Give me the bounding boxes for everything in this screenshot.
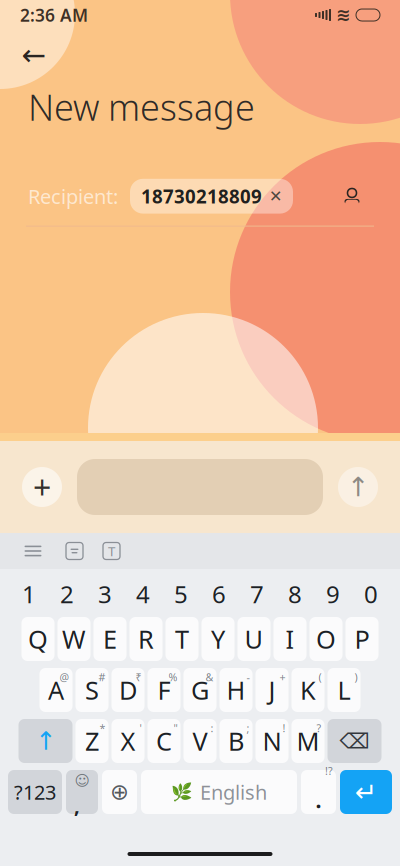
staticText: 2:36 AM <box>20 3 88 26</box>
button[interactable]: Choose contact <box>332 179 372 213</box>
button[interactable]: Send <box>338 467 378 507</box>
staticText: N <box>262 724 281 758</box>
staticText: Q <box>28 622 48 656</box>
staticText: R <box>138 622 154 656</box>
button[interactable]: Q <box>21 617 54 661</box>
button[interactable]: O <box>309 617 342 661</box>
button[interactable]: R <box>129 617 162 661</box>
button[interactable]: P <box>345 617 378 661</box>
button[interactable]: 1 <box>10 577 48 611</box>
button[interactable]: 18730218809 <box>130 179 293 214</box>
button[interactable]: 0 <box>352 577 390 611</box>
staticText: ≋ <box>336 5 351 25</box>
button[interactable]: E <box>93 617 126 661</box>
staticText: 5 <box>174 578 188 610</box>
button[interactable]: ( <box>291 668 324 712</box>
staticText: ↑ <box>347 472 369 502</box>
button[interactable]: 9 <box>314 577 352 611</box>
button[interactable]: 4 <box>124 577 162 611</box>
button[interactable]: Menu <box>20 538 46 564</box>
button[interactable] <box>77 459 323 515</box>
staticText: ⊕ <box>110 779 129 805</box>
staticText: ! <box>282 721 285 735</box>
staticText: T <box>175 622 189 656</box>
staticText: : <box>210 721 213 735</box>
button[interactable]: 7 <box>238 577 276 611</box>
button[interactable]: 8 <box>276 577 314 611</box>
staticText: A <box>48 673 64 707</box>
staticText: F <box>157 673 170 707</box>
staticText: ↵ <box>355 777 377 807</box>
staticText: Y <box>211 622 225 656</box>
staticText: ? <box>316 721 321 735</box>
staticText: I <box>285 622 294 656</box>
staticText: 9 <box>326 578 340 610</box>
button[interactable]: 🌿 <box>141 770 297 814</box>
button[interactable]: U <box>237 617 270 661</box>
staticText: ?123 <box>14 779 56 805</box>
staticText: ↑ <box>35 727 56 755</box>
button[interactable]: " <box>147 719 180 763</box>
button[interactable]: I <box>273 617 306 661</box>
button[interactable]: Back <box>12 35 56 75</box>
staticText: 🌿 <box>171 782 193 802</box>
button[interactable]: ?123 <box>8 770 62 814</box>
button[interactable]: Shift <box>18 719 72 763</box>
button[interactable]: Backspace <box>327 719 381 763</box>
staticText: 18730218809 <box>141 184 262 209</box>
staticText: & <box>205 670 213 684</box>
button[interactable]: ! <box>255 719 288 763</box>
staticText: @ <box>59 670 69 684</box>
staticText: 1 <box>22 578 36 610</box>
staticText: + <box>279 670 285 684</box>
button[interactable]: Switch language <box>102 770 137 814</box>
staticText: " <box>173 721 177 735</box>
button[interactable]: % <box>147 668 180 712</box>
button[interactable]: ₹ <box>111 668 144 712</box>
button[interactable]: & <box>183 668 216 712</box>
staticText: V <box>192 724 207 758</box>
staticText: ( <box>318 670 321 684</box>
staticText: X <box>120 724 135 758</box>
button[interactable]: * <box>75 719 108 763</box>
staticText: ) <box>354 670 357 684</box>
button[interactable]: T <box>165 617 198 661</box>
button[interactable]: ? <box>291 719 324 763</box>
button[interactable]: 6 <box>200 577 238 611</box>
staticText: P <box>354 622 369 656</box>
button[interactable]: Emoji and comma <box>66 770 98 814</box>
button[interactable]: ) <box>327 668 360 712</box>
button[interactable]: - <box>219 668 252 712</box>
button[interactable]: ; <box>219 719 252 763</box>
button[interactable]: Period <box>301 770 336 814</box>
staticText: ; <box>246 721 249 735</box>
staticText: New message <box>28 83 255 131</box>
button[interactable]: W <box>57 617 90 661</box>
staticText: ₹ <box>135 670 141 684</box>
staticText: U <box>244 622 263 656</box>
button[interactable]: 2 <box>48 577 86 611</box>
button[interactable]: + <box>255 668 288 712</box>
button[interactable]: # <box>75 668 108 712</box>
button[interactable]: @ <box>39 668 72 712</box>
staticText: ← <box>21 38 46 72</box>
button[interactable]: ' <box>111 719 144 763</box>
button[interactable]: : <box>183 719 216 763</box>
button[interactable]: Text settings <box>103 542 120 559</box>
button[interactable]: Y <box>201 617 234 661</box>
button[interactable]: 3 <box>86 577 124 611</box>
staticText: Z <box>85 724 99 758</box>
staticText: S <box>85 673 99 707</box>
staticText: L <box>337 673 350 707</box>
staticText: 4 <box>136 578 150 610</box>
staticText: 2 <box>60 578 74 610</box>
staticText: 8 <box>288 578 302 610</box>
staticText: ⌫ <box>339 729 369 753</box>
button[interactable]: Clipboard <box>66 542 83 559</box>
button[interactable]: Add attachment <box>22 467 62 507</box>
staticText: ✕ <box>269 187 282 205</box>
button[interactable]: Enter <box>340 770 392 814</box>
staticText: O <box>316 622 336 656</box>
staticText: B <box>228 724 244 758</box>
button[interactable]: 5 <box>162 577 200 611</box>
